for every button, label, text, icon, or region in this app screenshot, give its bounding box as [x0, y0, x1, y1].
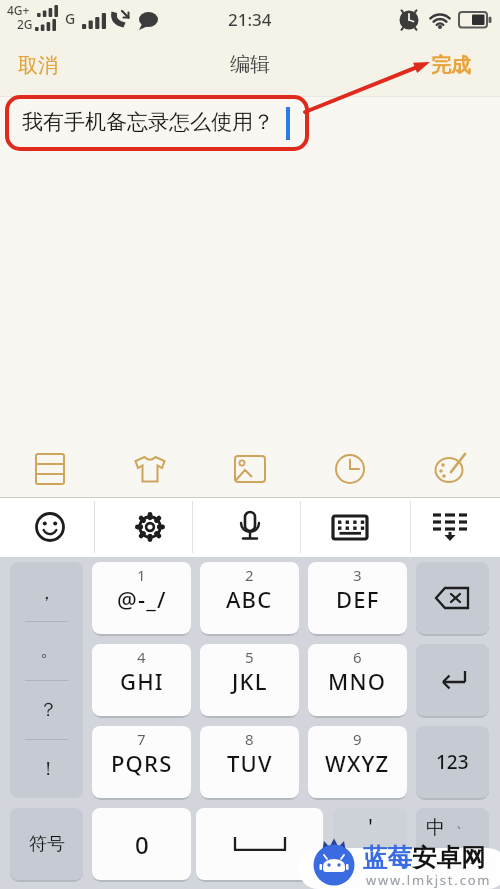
button[interactable]: 7	[92, 726, 191, 798]
staticText: 8	[245, 729, 254, 749]
staticText: 我有手机备忘录怎么使用？	[22, 109, 274, 135]
staticText: 21:34	[228, 8, 272, 31]
button[interactable]	[300, 497, 400, 557]
staticText: 7	[137, 729, 146, 749]
staticText: 编辑	[230, 52, 270, 77]
button[interactable]	[200, 497, 300, 557]
staticText: @-_/	[117, 584, 167, 614]
staticText: 1	[137, 565, 146, 585]
button[interactable]: 完成	[420, 48, 482, 82]
staticText: 2	[245, 565, 254, 585]
button[interactable]: 取消	[8, 48, 68, 82]
staticText: 4	[137, 647, 146, 667]
button[interactable]	[416, 562, 489, 634]
button[interactable]: 3	[308, 562, 407, 634]
staticText: 0	[135, 828, 149, 861]
staticText: TUV	[227, 748, 273, 778]
button[interactable]	[416, 644, 489, 716]
staticText: 蓝莓安卓网	[363, 842, 486, 873]
staticText: G	[65, 9, 76, 28]
staticText: 取消	[18, 53, 58, 78]
button[interactable]: 我有手机备忘录怎么使用？	[8, 98, 308, 150]
button[interactable]	[100, 440, 200, 497]
staticText: JKL	[232, 666, 268, 696]
staticText: ！	[39, 757, 58, 781]
staticText: 9	[353, 729, 362, 749]
button[interactable]	[0, 440, 100, 497]
staticText: GHI	[120, 666, 164, 696]
button[interactable]: 2	[200, 562, 299, 634]
button[interactable]	[200, 440, 300, 497]
staticText: 3	[353, 565, 362, 585]
button[interactable]	[400, 497, 500, 557]
staticText: '	[368, 811, 373, 841]
button[interactable]: 9	[308, 726, 407, 798]
staticText: 。	[40, 638, 59, 662]
button[interactable]: 6	[308, 644, 407, 716]
staticText: 2G	[17, 16, 33, 32]
staticText: ？	[39, 698, 58, 722]
staticText: 中	[426, 816, 445, 840]
button[interactable]: 1	[92, 562, 191, 634]
button[interactable]: 5	[200, 644, 299, 716]
staticText: 符号	[29, 833, 65, 856]
staticText: PQRS	[111, 748, 173, 778]
staticText: 5	[245, 647, 254, 667]
staticText: `	[457, 823, 461, 842]
button[interactable]: 123	[416, 726, 489, 798]
button[interactable]: ，	[10, 562, 83, 798]
button[interactable]	[100, 497, 200, 557]
staticText: 4G+	[7, 2, 30, 18]
staticText: 123	[436, 749, 469, 775]
staticText: ABC	[226, 584, 273, 614]
button[interactable]: 4	[92, 644, 191, 716]
staticText: 6	[353, 647, 362, 667]
button[interactable]	[300, 440, 400, 497]
button[interactable]	[196, 808, 323, 880]
button[interactable]: 0	[92, 808, 191, 880]
staticText: ，	[37, 581, 56, 605]
button[interactable]: 中	[416, 808, 489, 880]
button[interactable]: 8	[200, 726, 299, 798]
staticText: DEF	[336, 584, 380, 614]
staticText: www.lmkjst.com	[366, 871, 492, 889]
staticText: 完成	[431, 53, 471, 78]
button[interactable]	[400, 440, 500, 497]
button[interactable]: 符号	[10, 808, 83, 880]
button[interactable]	[0, 497, 100, 557]
staticText: MNO	[328, 666, 387, 696]
button[interactable]: '	[333, 808, 407, 880]
staticText: WXYZ	[325, 748, 390, 778]
